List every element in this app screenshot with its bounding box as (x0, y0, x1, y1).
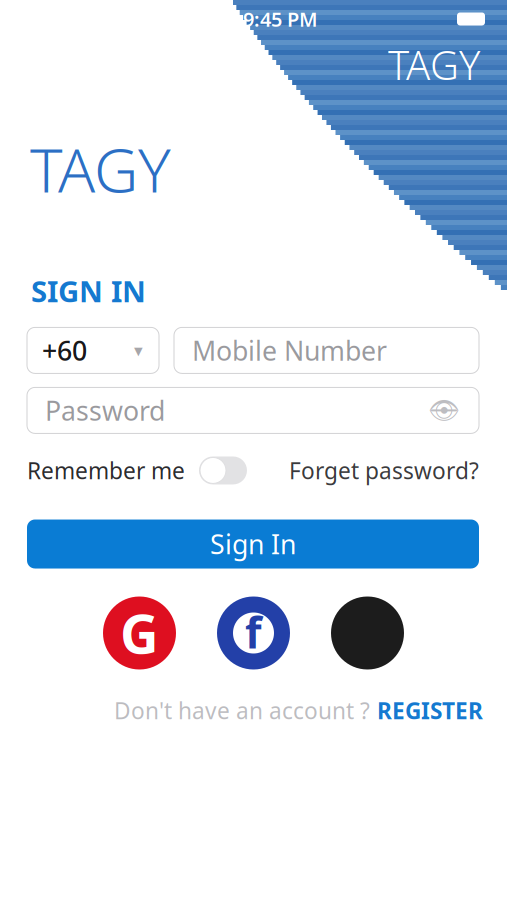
staticText: G (120, 598, 159, 668)
staticText: Mobile Number (192, 333, 387, 368)
staticText: Don't have an account ? (114, 695, 370, 726)
staticText: 9:45 PM (243, 6, 318, 32)
staticText: TAGY (30, 128, 171, 209)
staticText: Password (45, 393, 165, 428)
staticText: ▾ (134, 341, 143, 360)
button[interactable]: Sign in with Apple (331, 596, 404, 669)
staticText: +60 (42, 333, 87, 368)
button[interactable]: Don't have an account ? (114, 689, 483, 732)
button[interactable]: Sign in with Facebook (217, 596, 290, 669)
button[interactable]: Forget password? (289, 449, 479, 491)
button[interactable]: Sign in with Google (103, 596, 176, 669)
button[interactable]: Password (27, 387, 479, 433)
staticText: Sign In (210, 526, 296, 562)
staticText: f (245, 604, 262, 660)
staticText: 👁 (428, 396, 460, 425)
staticText: REGISTER (377, 695, 483, 726)
staticText: Remember me (27, 455, 185, 485)
button[interactable]: Mobile Number (174, 327, 479, 373)
button[interactable]: Remember me (185, 452, 247, 488)
staticText: TAGY (388, 38, 480, 91)
staticText: Forget password? (289, 455, 479, 485)
button[interactable]: Sign In (27, 519, 479, 568)
button[interactable]: +60 (27, 327, 159, 373)
staticText: SIGN IN (31, 271, 146, 310)
